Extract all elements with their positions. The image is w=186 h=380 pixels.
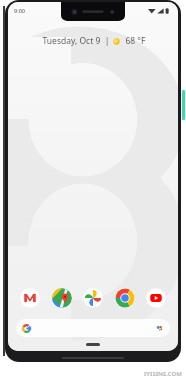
staticText: 9:00 bbox=[14, 7, 25, 14]
button[interactable]: Photos bbox=[83, 288, 103, 308]
staticText: Tuesday, Oct 9 | bbox=[40, 35, 112, 47]
staticText: 68 °F bbox=[121, 35, 146, 47]
button[interactable]: Power button bbox=[182, 90, 185, 120]
button[interactable]: Gmail bbox=[20, 288, 40, 308]
button[interactable]: Chrome bbox=[115, 288, 135, 308]
button[interactable] bbox=[86, 343, 100, 346]
button[interactable]: YouTube bbox=[146, 288, 166, 308]
staticText: IYISINE.COM bbox=[144, 370, 182, 378]
button[interactable]: Search bbox=[16, 319, 170, 337]
button[interactable]: Tuesday, Oct 9 | bbox=[8, 35, 178, 47]
button[interactable]: Maps bbox=[52, 288, 72, 308]
